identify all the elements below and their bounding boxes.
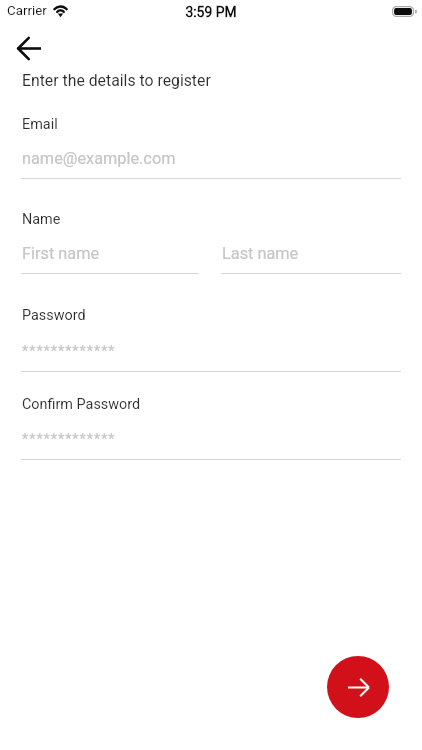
staticText: Carrier xyxy=(7,3,47,19)
staticText: Confirm Password xyxy=(22,396,141,413)
button[interactable]: Back xyxy=(6,26,51,71)
staticText: name@example.com xyxy=(22,149,176,168)
staticText: Name xyxy=(22,211,61,228)
button[interactable]: ************* xyxy=(21,416,401,460)
button[interactable]: ************* xyxy=(21,328,401,372)
staticText: Last name xyxy=(222,244,299,263)
staticText: Email xyxy=(22,116,58,133)
staticText: ************* xyxy=(22,431,116,448)
staticText: Enter the details to register xyxy=(22,71,211,90)
staticText: First name xyxy=(22,244,100,263)
staticText: ************* xyxy=(22,343,116,360)
button[interactable]: First name xyxy=(21,230,199,274)
button[interactable]: Last name xyxy=(221,230,401,274)
staticText: Password xyxy=(22,307,86,324)
button[interactable]: name@example.com xyxy=(21,135,401,179)
staticText: 3:59 PM xyxy=(185,4,237,20)
button[interactable]: Next xyxy=(327,656,389,718)
